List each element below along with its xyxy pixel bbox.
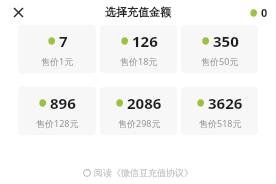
button[interactable]: 2086 bbox=[100, 87, 177, 135]
staticText: 2086 bbox=[127, 93, 162, 113]
staticText: 896 bbox=[50, 93, 76, 113]
staticText: 350 bbox=[213, 31, 239, 51]
button[interactable]: Close bbox=[10, 4, 26, 20]
button[interactable]: 350 bbox=[181, 25, 258, 73]
staticText: 126 bbox=[132, 31, 158, 51]
button[interactable]: 896 bbox=[18, 87, 96, 135]
staticText: 售价18元 bbox=[120, 55, 158, 67]
staticText: 3626 bbox=[208, 93, 243, 113]
staticText: 售价128元 bbox=[36, 117, 79, 129]
staticText: 0 bbox=[261, 5, 268, 20]
staticText: 售价298元 bbox=[118, 117, 161, 129]
button[interactable]: 0 bbox=[250, 5, 268, 20]
button[interactable]: 阅读 bbox=[0, 167, 276, 178]
staticText: 售价518元 bbox=[199, 117, 242, 129]
staticText: 选择充值金额 bbox=[105, 5, 171, 19]
button[interactable]: 3626 bbox=[181, 87, 258, 135]
staticText: 7 bbox=[59, 31, 68, 51]
staticText: 《微信豆充值协议》 bbox=[112, 167, 193, 178]
button[interactable]: 7 bbox=[18, 25, 96, 73]
button[interactable]: 126 bbox=[100, 25, 177, 73]
staticText: 售价1元 bbox=[41, 55, 74, 67]
staticText: 售价50元 bbox=[201, 55, 239, 67]
staticText: 阅读 bbox=[94, 167, 112, 178]
